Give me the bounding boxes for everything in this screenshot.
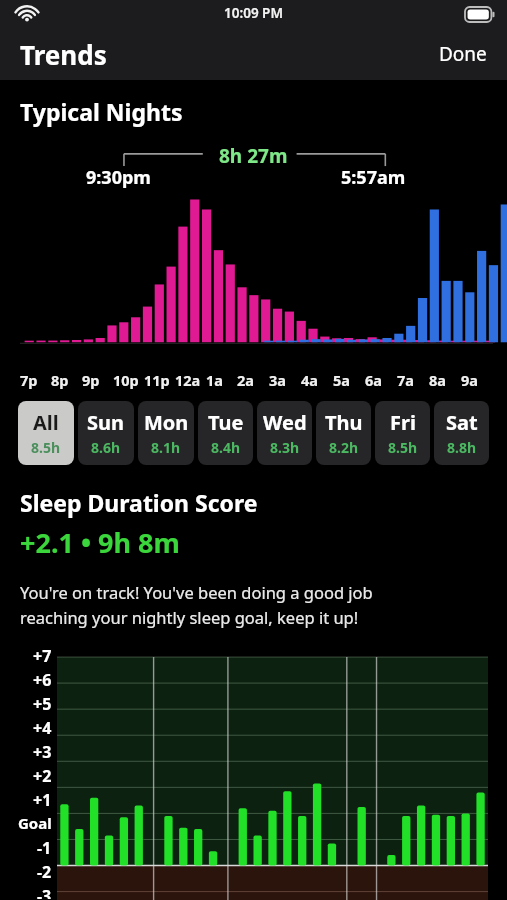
staticText: 5:57am [341,165,406,190]
staticText: Goal [18,813,52,833]
staticText: 12a [175,370,201,390]
staticText: 8a [429,370,446,390]
staticText: -3 [37,885,52,899]
staticText: 9:30pm [86,165,151,190]
staticText: +5 [33,693,52,715]
button[interactable]: All [18,401,74,465]
staticText: Fri [390,409,416,436]
staticText: 10:09 PM [224,4,283,22]
staticText: 8.4h [211,438,241,457]
button[interactable]: Tue [198,401,253,465]
staticText: 7a [397,370,414,390]
staticText: 8.5h [388,438,418,457]
staticText: 8.6h [91,438,121,457]
staticText: 6a [365,370,382,390]
staticText: All [33,409,59,436]
staticText: Thu [325,409,363,436]
button[interactable]: Mon [138,401,194,465]
staticText: 8.8h [447,438,477,457]
staticText: Sat [446,409,478,436]
staticText: 1a [206,370,223,390]
staticText: 4a [301,370,318,390]
staticText: Sleep Duration Score [20,487,258,518]
staticText: 10p [113,370,139,390]
staticText: Typical Nights [20,96,183,127]
staticText: 8.3h [270,438,300,457]
staticText: Tue [208,409,244,436]
staticText: 8.5h [31,438,61,457]
staticText: +6 [33,669,52,691]
button[interactable]: Fri [375,401,430,465]
staticText: Trends [20,37,107,72]
staticText: 8p [51,370,69,390]
staticText: You're on track! You've been doing a goo… [20,581,373,628]
staticText: Wed [263,409,307,436]
staticText: 9a [461,370,478,390]
staticText: Done [439,41,487,67]
staticText: +2.1 • 9h 8m [20,524,180,561]
staticText: 5a [333,370,350,390]
staticText: +7 [33,645,52,667]
button[interactable]: Wed [257,401,312,465]
staticText: 3a [269,370,286,390]
staticText: +3 [33,741,52,763]
staticText: 7p [20,370,38,390]
staticText: -2 [37,861,52,883]
staticText: Sun [87,409,125,436]
staticText: +2 [33,765,52,787]
staticText: 8h 27m [219,143,288,169]
button[interactable]: Thu [316,401,371,465]
staticText: 8.2h [329,438,359,457]
staticText: 9p [82,370,100,390]
button[interactable]: Sun [78,401,134,465]
staticText: 8.1h [151,438,181,457]
staticText: +1 [33,789,52,811]
staticText: Mon [144,409,189,436]
staticText: 11p [144,370,170,390]
button[interactable]: Sat [434,401,489,465]
staticText: -1 [37,837,52,859]
staticText: +4 [33,717,52,739]
button[interactable]: Done [419,33,507,75]
staticText: 2a [237,370,254,390]
